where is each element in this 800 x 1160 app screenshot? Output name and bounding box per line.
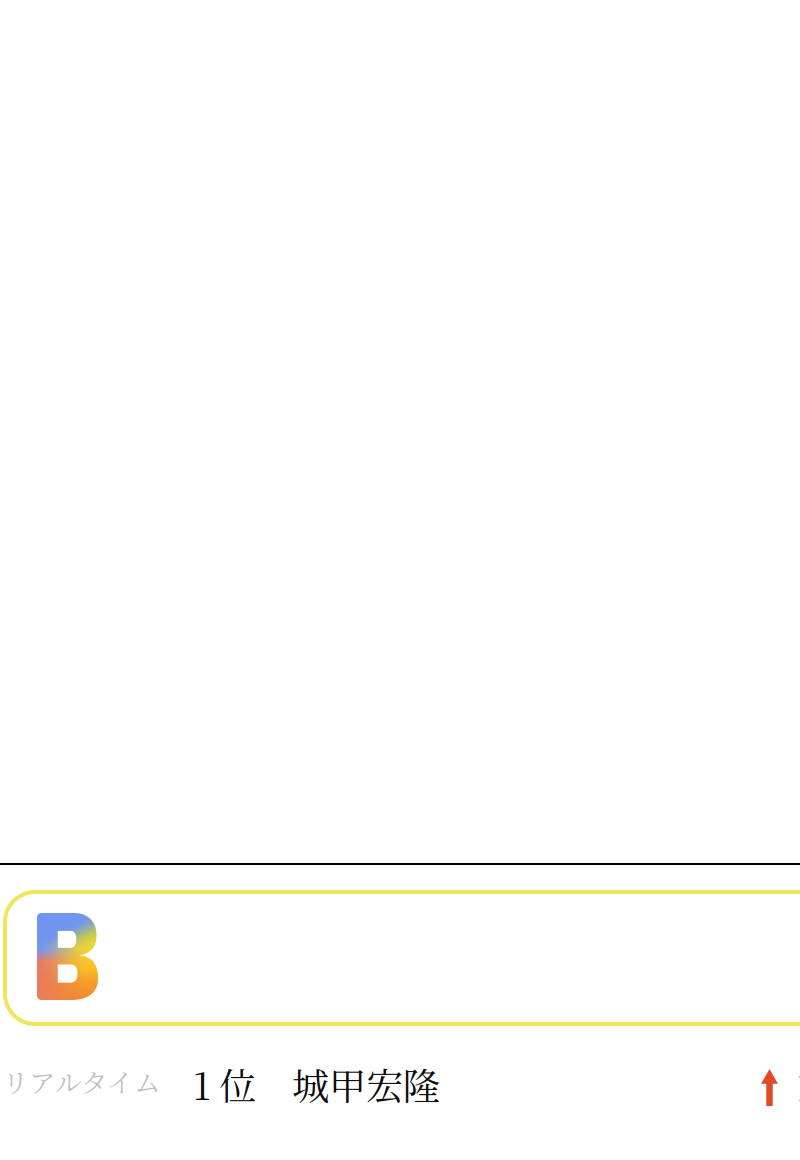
staticText: リアルタイム	[2, 1062, 161, 1100]
staticText: 城甲宏隆	[292, 1057, 440, 1111]
button[interactable]: バナー	[5, 892, 800, 1024]
staticText: 位	[219, 1057, 256, 1111]
staticText: 1	[797, 1061, 800, 1111]
staticText: 1	[193, 1057, 211, 1111]
button[interactable]: リアルタイム	[0, 1055, 800, 1115]
